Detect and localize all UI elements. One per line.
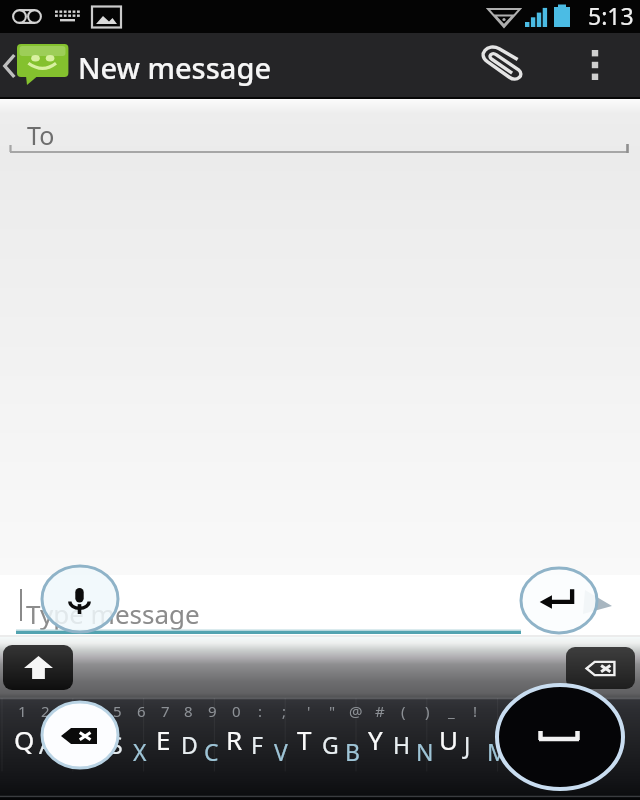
staticText: ( [401,701,406,721]
staticText: 8 [184,701,193,721]
staticText: _ [448,701,455,721]
staticText: E [156,722,171,757]
staticText: Y [368,722,383,757]
staticText: @ [349,701,363,721]
button[interactable] [297,720,367,770]
staticText: Q [14,722,35,757]
staticText: D [181,729,198,760]
staticText: 6 [137,701,146,721]
button[interactable]: Type message [0,575,640,635]
staticText: " [329,701,336,721]
button[interactable]: Backspace [566,647,635,689]
button[interactable] [156,720,226,770]
staticText: 3 [65,701,74,721]
staticText: Type message [26,596,200,631]
staticText: S [110,729,123,760]
staticText: M [487,736,508,767]
button[interactable] [14,720,84,770]
button[interactable]: More options [570,33,620,97]
staticText: 1 [18,701,27,721]
button[interactable] [85,720,155,770]
staticText: ; [282,701,287,721]
staticText: V [274,736,288,767]
staticText: T [297,722,312,757]
button[interactable]: Backspace [59,726,99,746]
staticText: 0 [232,701,241,721]
button[interactable] [439,720,509,770]
staticText: C [204,736,219,767]
staticText: J [464,729,471,760]
button[interactable]: To [0,99,640,155]
button[interactable]: New message [78,35,280,99]
staticText: U [439,722,459,757]
staticText: : [258,701,263,721]
button[interactable]: Voice input [62,585,96,617]
staticText: H [393,729,411,760]
staticText: 9 [208,701,217,721]
staticText: To [27,118,55,152]
button[interactable]: Space [536,726,582,746]
staticText: 5 [113,701,122,721]
button[interactable]: Send [536,586,578,614]
staticText: 7 [161,701,170,721]
staticText: W [85,722,110,757]
button[interactable]: Shift [3,645,73,690]
staticText: B [345,736,360,767]
staticText: F [251,729,263,760]
staticText: 2 [41,701,50,721]
staticText: ! [473,701,478,721]
staticText: 5:13 [588,0,634,31]
staticText: ' [307,701,311,721]
staticText: 4 [89,701,98,721]
staticText: # [375,701,385,721]
staticText: ) [425,701,430,721]
staticText: X [133,736,147,767]
button[interactable] [368,720,438,770]
button[interactable]: Attach [466,33,538,97]
staticText: Z [62,736,76,767]
button[interactable]: Navigate up [0,33,80,97]
staticText: New message [78,48,272,87]
staticText: R [226,722,243,757]
button[interactable] [226,720,296,770]
staticText: G [322,729,339,760]
staticText: N [416,736,434,767]
staticText: A [39,729,54,760]
